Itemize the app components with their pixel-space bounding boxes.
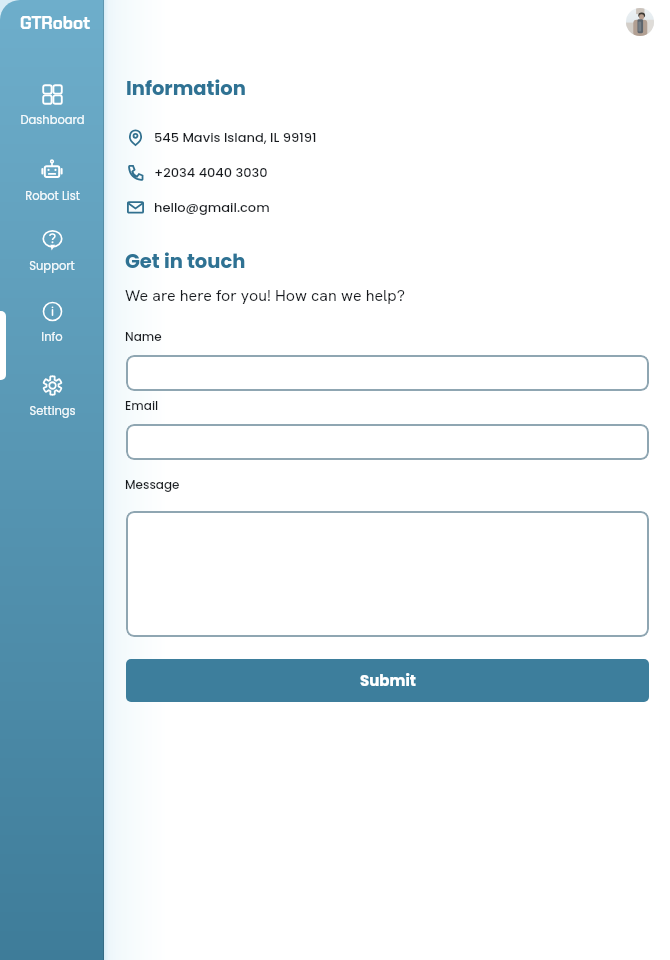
button[interactable]: Robot List	[0, 159, 104, 204]
staticText: hello@gmail.com	[154, 198, 270, 216]
button[interactable]: Settings	[0, 375, 104, 419]
button[interactable]	[126, 355, 649, 391]
staticText: Email	[125, 397, 159, 414]
button[interactable]: Support	[0, 230, 104, 274]
button[interactable]: Info	[0, 301, 104, 345]
staticText: Get in touch	[125, 248, 246, 275]
button[interactable]: hello@gmail.com	[126, 196, 270, 218]
staticText: Info	[41, 329, 63, 345]
staticText: Name	[125, 328, 162, 345]
staticText: 545 Mavis Island, IL 99191	[154, 128, 317, 146]
button[interactable]: Submit	[126, 659, 649, 702]
button[interactable]: Profile	[626, 8, 654, 36]
staticText: GTRobot	[20, 12, 90, 34]
staticText: Support	[29, 258, 75, 274]
staticText: Submit	[360, 670, 416, 691]
button[interactable]: Dashboard	[0, 84, 104, 128]
button[interactable]: +2034 4040 3030	[126, 161, 268, 183]
staticText: Robot List	[25, 188, 80, 204]
staticText: We are here for you! How can we help?	[125, 285, 405, 306]
button[interactable]: 545 Mavis Island, IL 99191	[126, 126, 317, 148]
staticText: +2034 4040 3030	[154, 163, 268, 181]
button[interactable]	[126, 511, 649, 637]
staticText: Message	[125, 476, 180, 493]
staticText: Settings	[29, 403, 76, 419]
staticText: Dashboard	[20, 112, 85, 128]
staticText: Information	[126, 75, 246, 102]
button[interactable]	[126, 424, 649, 460]
